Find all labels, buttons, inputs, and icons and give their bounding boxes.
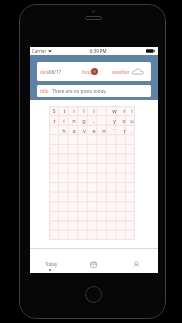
staticText: food: [82, 69, 92, 75]
staticText: w: [112, 107, 117, 115]
staticText: t: [123, 127, 126, 135]
staticText: y: [113, 117, 116, 125]
staticText: n: [72, 117, 76, 125]
staticText: i: [63, 117, 65, 125]
staticText: a: [72, 127, 76, 135]
staticText: i: [73, 107, 75, 115]
staticText: 06/17: [49, 69, 62, 75]
button[interactable]: title: [37, 85, 151, 97]
staticText: t: [53, 117, 56, 125]
staticText: h: [62, 127, 66, 135]
staticText: r: [123, 107, 126, 115]
staticText: ,: [93, 117, 95, 125]
staticText: n: [102, 127, 106, 135]
staticText: g: [82, 117, 86, 125]
button[interactable]: Today: [30, 257, 72, 271]
staticText: S: [52, 107, 56, 115]
staticText: .: [131, 127, 133, 135]
staticText: Today: [45, 261, 58, 267]
staticText: i: [131, 107, 133, 115]
staticText: l: [83, 107, 85, 115]
button[interactable]: Calendar: [72, 257, 115, 271]
staticText: e: [92, 127, 96, 135]
staticText: l: [93, 107, 95, 115]
staticText: t: [63, 107, 66, 115]
button[interactable]: Profile: [115, 257, 158, 271]
staticText: There are no posts today.: [52, 88, 107, 94]
staticText: o: [122, 117, 126, 125]
staticText: weather: [112, 69, 130, 75]
button[interactable]: date: [37, 62, 151, 81]
staticText: date: [40, 69, 50, 75]
staticText: v: [83, 127, 86, 135]
staticText: ': [113, 127, 115, 135]
staticText: u: [130, 117, 134, 125]
staticText: title: [40, 88, 49, 94]
staticText: 6:39 PM: [90, 48, 107, 54]
staticText: Carrier: [32, 48, 47, 54]
